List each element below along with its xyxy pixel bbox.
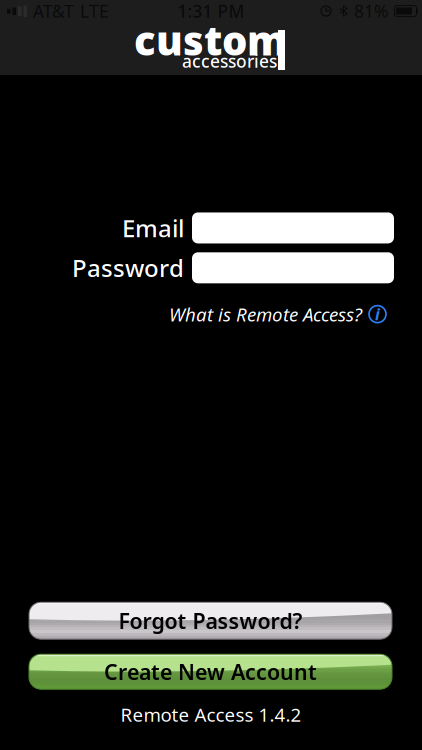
button[interactable]: What is Remote Access? xyxy=(169,302,386,326)
button[interactable] xyxy=(192,252,394,283)
staticText: accessories xyxy=(182,49,277,72)
staticText: AT&T xyxy=(33,0,74,22)
staticText: LTE xyxy=(80,0,109,22)
staticText: custom xyxy=(134,13,287,66)
staticText: 81% xyxy=(354,0,388,22)
button[interactable]: Create New Account xyxy=(29,654,392,689)
staticText: Email xyxy=(122,212,184,244)
button[interactable] xyxy=(192,212,394,243)
staticText: Remote Access 1.4.2 xyxy=(120,702,301,727)
staticText: Forgot Password? xyxy=(118,606,302,635)
staticText: What is Remote Access? xyxy=(169,302,362,326)
staticText: 1:31 PM xyxy=(177,0,244,22)
button[interactable]: Forgot Password? xyxy=(29,602,392,639)
staticText: Create New Account xyxy=(104,657,317,686)
staticText: i xyxy=(375,303,380,325)
staticText: Password xyxy=(72,252,184,284)
